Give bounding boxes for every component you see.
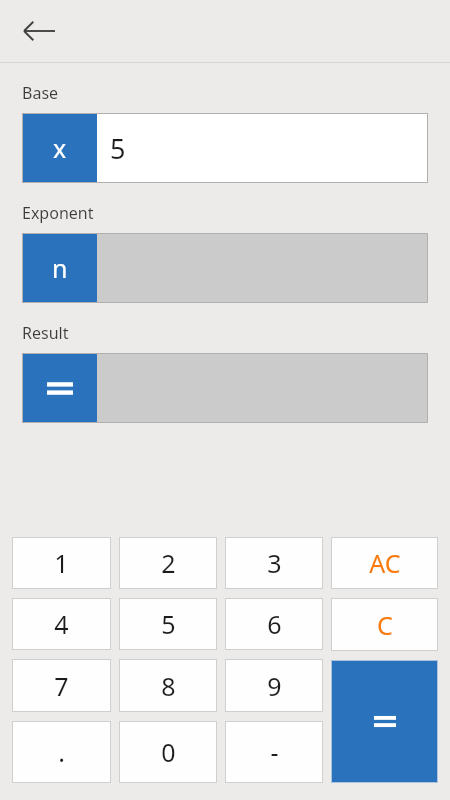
staticText: . xyxy=(58,735,65,769)
staticText: 5 xyxy=(161,607,176,641)
button[interactable]: 1 xyxy=(12,537,111,589)
staticText: 7 xyxy=(54,669,69,703)
staticText: 8 xyxy=(161,669,176,703)
button[interactable]: 9 xyxy=(225,659,323,712)
staticText: 5 xyxy=(110,130,126,167)
button[interactable]: 7 xyxy=(12,659,111,712)
staticText: Base xyxy=(22,82,59,104)
staticText: 1 xyxy=(54,546,69,580)
staticText: 0 xyxy=(161,735,176,769)
staticText: - xyxy=(270,735,279,769)
button[interactable]: Equals xyxy=(331,660,438,783)
button[interactable]: 6 xyxy=(225,598,323,650)
staticText: Exponent xyxy=(22,202,94,224)
button[interactable]: C xyxy=(331,598,438,651)
button[interactable]: 2 xyxy=(119,537,217,589)
staticText: C xyxy=(377,608,393,642)
staticText: 3 xyxy=(267,546,282,580)
button[interactable]: x xyxy=(22,113,428,183)
button[interactable]: 5 xyxy=(119,598,217,650)
button[interactable]: n xyxy=(22,233,428,303)
button[interactable]: 8 xyxy=(119,659,217,712)
button[interactable]: Back xyxy=(10,9,68,53)
staticText: 6 xyxy=(267,607,282,641)
staticText: 4 xyxy=(54,607,69,641)
button[interactable]: AC xyxy=(331,537,438,589)
staticText: n xyxy=(52,251,68,285)
button[interactable]: 4 xyxy=(12,598,111,650)
button[interactable] xyxy=(22,353,428,423)
staticText: AC xyxy=(369,546,401,580)
button[interactable]: - xyxy=(225,721,323,783)
staticText: Result xyxy=(22,322,69,344)
staticText: 2 xyxy=(161,546,176,580)
staticText: 9 xyxy=(267,669,282,703)
button[interactable]: . xyxy=(12,721,111,783)
button[interactable]: 3 xyxy=(225,537,323,589)
button[interactable]: 0 xyxy=(119,721,217,783)
staticText: x xyxy=(53,131,67,165)
